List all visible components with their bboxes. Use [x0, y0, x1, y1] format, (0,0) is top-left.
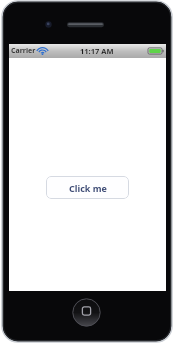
staticText: 11:17 AM: [80, 46, 114, 56]
button[interactable]: Click me: [46, 176, 129, 199]
other: Battery: [148, 47, 164, 55]
staticText: Carrier: [11, 46, 36, 56]
other: Wi-Fi: [38, 47, 47, 56]
button[interactable]: Home: [72, 298, 101, 327]
staticText: Click me: [69, 182, 107, 194]
